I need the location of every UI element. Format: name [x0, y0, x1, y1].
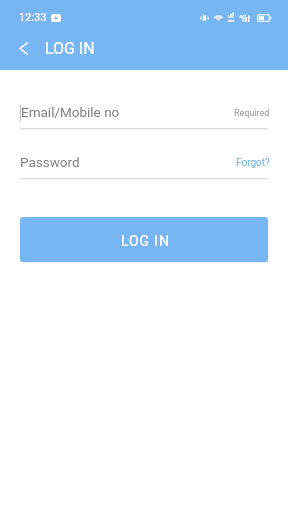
button[interactable]: Back	[7, 32, 39, 64]
staticText: LOG IN	[121, 233, 170, 249]
button[interactable]: Required	[234, 108, 270, 119]
staticText: Forgot?	[236, 157, 270, 169]
staticText: Required	[234, 108, 270, 119]
staticText: Email/Mobile no	[21, 104, 120, 120]
staticText: 12:33	[19, 11, 47, 24]
button[interactable]: Forgot?	[236, 157, 270, 169]
staticText: LOG IN	[45, 39, 95, 58]
button[interactable]: LOG IN	[20, 217, 268, 262]
staticText: Password	[20, 154, 80, 170]
staticText: 4G	[239, 13, 247, 20]
